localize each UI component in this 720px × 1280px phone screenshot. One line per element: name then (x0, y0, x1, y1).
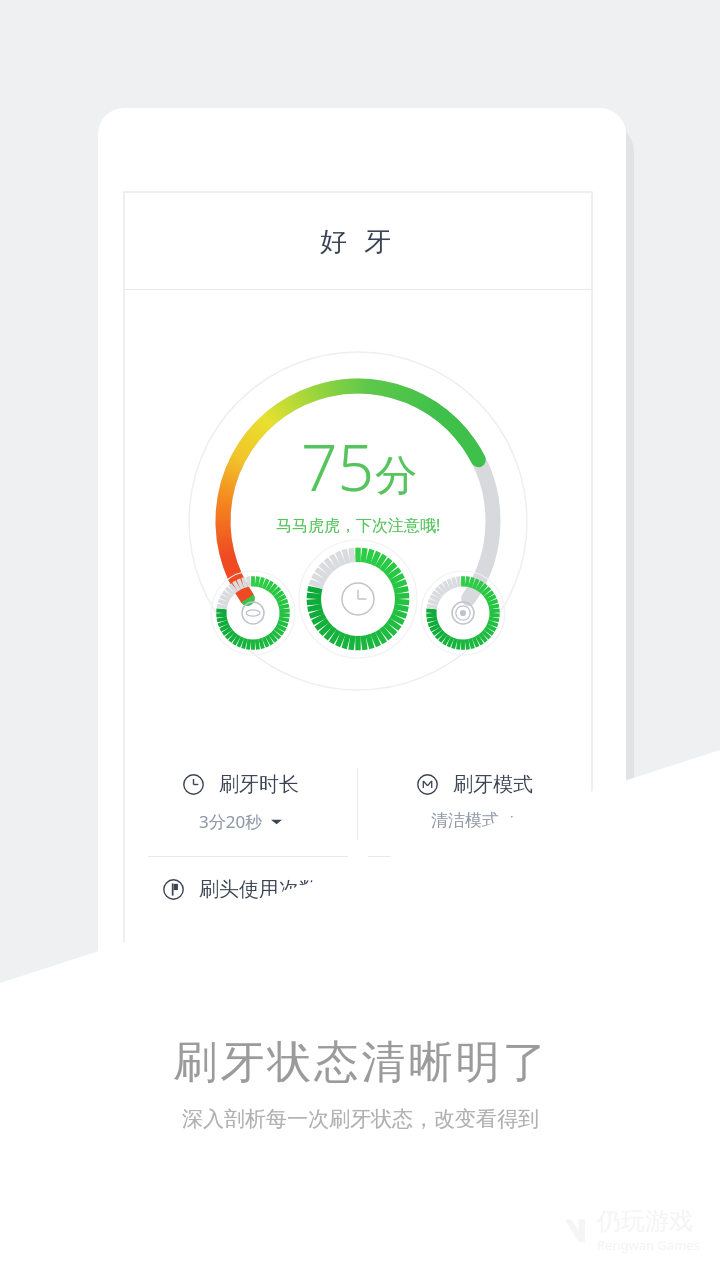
staticText: 75 (301, 423, 375, 510)
staticText: 刷牙状态清晰明了 (172, 1035, 548, 1090)
staticText: 清洁模式 (431, 810, 499, 831)
staticText: 分 (375, 450, 417, 503)
staticText: 深入剖析每一次刷牙状态，改变看得到 (182, 1106, 539, 1132)
button[interactable]: 刷牙时长 (124, 752, 357, 833)
staticText: 好 牙 (320, 222, 397, 259)
staticText: 3分20秒 (199, 810, 263, 833)
staticText: 仍玩游戏 (597, 1206, 693, 1236)
staticText: Rengwan Games (597, 1236, 700, 1254)
button[interactable]: 刷头使用次数 (124, 857, 357, 938)
button[interactable]: 刷牙模式 (358, 752, 592, 831)
button[interactable]: Rengwan Games watermark (549, 1206, 700, 1254)
staticText: 马马虎虎，下次注意哦! (276, 514, 441, 536)
staticText: 刷牙时长 (219, 772, 299, 797)
staticText: 刷牙模式 (453, 772, 533, 797)
staticText: 刷头使用次数 (199, 877, 319, 902)
